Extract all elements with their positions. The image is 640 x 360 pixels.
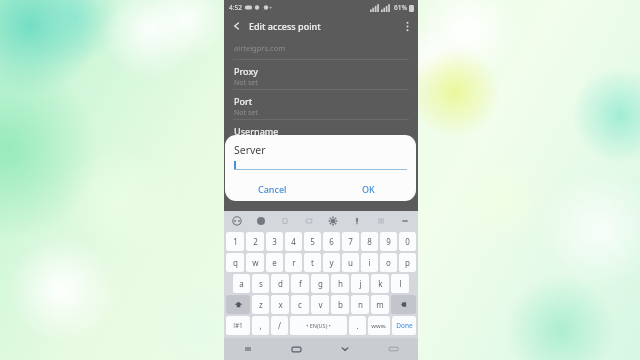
button[interactable]: c bbox=[291, 295, 309, 314]
button[interactable]: 8 bbox=[361, 232, 378, 251]
button[interactable]: More bbox=[398, 214, 412, 228]
staticText: www. bbox=[371, 322, 387, 330]
staticText: Proxy bbox=[234, 65, 259, 77]
staticText: s bbox=[259, 278, 263, 289]
staticText: • EN(US) • bbox=[306, 322, 331, 329]
button[interactable]: www. bbox=[368, 316, 390, 335]
staticText: u bbox=[348, 257, 353, 268]
button[interactable]: 0 bbox=[399, 232, 416, 251]
button[interactable]: Emoji bbox=[254, 214, 268, 228]
staticText: + bbox=[269, 4, 273, 12]
button[interactable]: e bbox=[266, 253, 283, 272]
button[interactable]: o bbox=[380, 253, 397, 272]
button[interactable]: v bbox=[311, 295, 329, 314]
staticText: h bbox=[338, 278, 343, 289]
button[interactable]: 5 bbox=[304, 232, 321, 251]
staticText: Port bbox=[234, 95, 253, 107]
button[interactable]: 2 bbox=[246, 232, 264, 251]
button[interactable]: . bbox=[349, 316, 366, 335]
staticText: i bbox=[368, 257, 371, 268]
button[interactable]: 6 bbox=[323, 232, 340, 251]
button[interactable]: Clipboard bbox=[278, 214, 292, 228]
button[interactable]: 3 bbox=[266, 232, 283, 251]
button[interactable]: 9 bbox=[380, 232, 397, 251]
staticText: n bbox=[358, 299, 363, 310]
button[interactable]: Settings bbox=[326, 214, 340, 228]
button[interactable]: • EN(US) • bbox=[290, 316, 347, 335]
staticText: , bbox=[259, 320, 262, 331]
staticText: c bbox=[298, 299, 302, 310]
staticText: m bbox=[376, 299, 384, 310]
button[interactable]: f bbox=[291, 274, 309, 293]
staticText: . bbox=[356, 320, 359, 331]
button[interactable]: 7 bbox=[342, 232, 359, 251]
staticText: 4 bbox=[291, 236, 296, 247]
staticText: Edit access point bbox=[249, 20, 321, 32]
button[interactable]: b bbox=[331, 295, 349, 314]
button[interactable]: Back bbox=[228, 17, 246, 35]
staticText: Server bbox=[234, 143, 266, 157]
button[interactable]: a bbox=[233, 274, 250, 293]
staticText: 7 bbox=[348, 236, 353, 247]
staticText: o bbox=[386, 257, 391, 268]
staticText: 8 bbox=[367, 236, 372, 247]
button[interactable]: t bbox=[304, 253, 321, 272]
button[interactable]: z bbox=[252, 295, 269, 314]
button[interactable]: Username bbox=[224, 120, 418, 149]
staticText: !#1 bbox=[233, 321, 243, 330]
button[interactable]: Port bbox=[224, 90, 418, 119]
button[interactable]: n bbox=[351, 295, 369, 314]
button[interactable]: Hide keyboard bbox=[320, 338, 369, 360]
staticText: e bbox=[272, 257, 277, 268]
staticText: 4:52 bbox=[229, 3, 242, 12]
button[interactable]: / bbox=[271, 316, 288, 335]
button[interactable]: Voice input bbox=[350, 214, 364, 228]
button[interactable]: !#1 bbox=[226, 316, 250, 335]
button[interactable]: y bbox=[323, 253, 340, 272]
staticText: r bbox=[292, 257, 296, 268]
staticText: 0 bbox=[405, 236, 410, 247]
button[interactable]: l bbox=[391, 274, 409, 293]
staticText: v bbox=[318, 299, 323, 310]
button[interactable]: Cancel bbox=[225, 177, 320, 201]
button[interactable]: 1 bbox=[226, 232, 244, 251]
button[interactable]: d bbox=[271, 274, 289, 293]
button[interactable]: j bbox=[351, 274, 369, 293]
staticText: 61% bbox=[394, 3, 407, 12]
staticText: Cancel bbox=[258, 183, 287, 195]
button[interactable]: p bbox=[399, 253, 416, 272]
staticText: j bbox=[359, 278, 362, 289]
button[interactable]: Keyboard mode bbox=[302, 214, 316, 228]
button[interactable]: u bbox=[342, 253, 359, 272]
button[interactable]: Proxy bbox=[224, 60, 418, 89]
button[interactable]: Predictive text bbox=[230, 214, 244, 228]
button[interactable]: q bbox=[226, 253, 244, 272]
button[interactable]: 4 bbox=[285, 232, 302, 251]
button[interactable]: Backspace bbox=[391, 295, 416, 314]
button[interactable]: Keyboard switcher bbox=[369, 338, 418, 360]
button[interactable]: More options bbox=[399, 18, 415, 34]
button[interactable]: g bbox=[311, 274, 329, 293]
staticText: z bbox=[259, 299, 263, 310]
button[interactable]: OK bbox=[320, 177, 416, 201]
button[interactable]: , bbox=[252, 316, 269, 335]
staticText: 6 bbox=[329, 236, 334, 247]
button[interactable]: m bbox=[371, 295, 389, 314]
button[interactable]: r bbox=[285, 253, 302, 272]
button[interactable]: Split keyboard bbox=[374, 214, 388, 228]
staticText: / bbox=[278, 320, 281, 331]
staticText: 1 bbox=[233, 236, 238, 247]
button[interactable]: w bbox=[246, 253, 264, 272]
button[interactable]: h bbox=[331, 274, 349, 293]
staticText: w bbox=[252, 257, 259, 268]
button[interactable]: Recents bbox=[224, 338, 272, 360]
staticText: 9 bbox=[386, 236, 391, 247]
button[interactable]: Done bbox=[392, 316, 416, 335]
staticText: a bbox=[239, 278, 244, 289]
button[interactable]: k bbox=[371, 274, 389, 293]
button[interactable]: s bbox=[252, 274, 269, 293]
button[interactable]: Home bbox=[272, 338, 320, 360]
button[interactable]: x bbox=[271, 295, 289, 314]
button[interactable]: i bbox=[361, 253, 378, 272]
button[interactable]: Shift bbox=[226, 295, 250, 314]
